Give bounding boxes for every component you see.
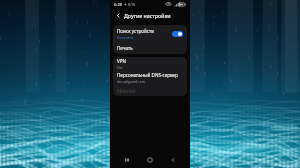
- staticText: Персональный DNS-сервер: [117, 72, 178, 78]
- staticText: 0:15: [128, 2, 135, 7]
- staticText: Другие настройки: [124, 12, 171, 19]
- staticText: Печать: [117, 45, 133, 51]
- button[interactable]: Печать: [113, 42, 187, 54]
- staticText: 6:20: [114, 2, 122, 7]
- button[interactable]: Персональный DNS-сервер: [113, 71, 187, 85]
- button[interactable]: VPN: [113, 57, 187, 71]
- staticText: Нет: [117, 65, 123, 70]
- button[interactable]: Поиск устройств: [113, 25, 187, 42]
- button[interactable]: Последние приложения: [121, 154, 133, 166]
- staticText: Ethernet: [117, 88, 136, 94]
- staticText: VPN: [117, 58, 127, 64]
- staticText: Включено: [117, 35, 134, 40]
- button[interactable]: Переключатель Поиск устройств: [172, 31, 183, 37]
- button[interactable]: Назад: [167, 154, 179, 166]
- staticText: dns.adguard.com: [117, 79, 145, 84]
- staticText: Поиск устройств: [117, 28, 154, 34]
- button[interactable]: Ethernet: [113, 85, 187, 96]
- button[interactable]: Назад: [114, 11, 123, 20]
- button[interactable]: Главный экран: [144, 154, 156, 166]
